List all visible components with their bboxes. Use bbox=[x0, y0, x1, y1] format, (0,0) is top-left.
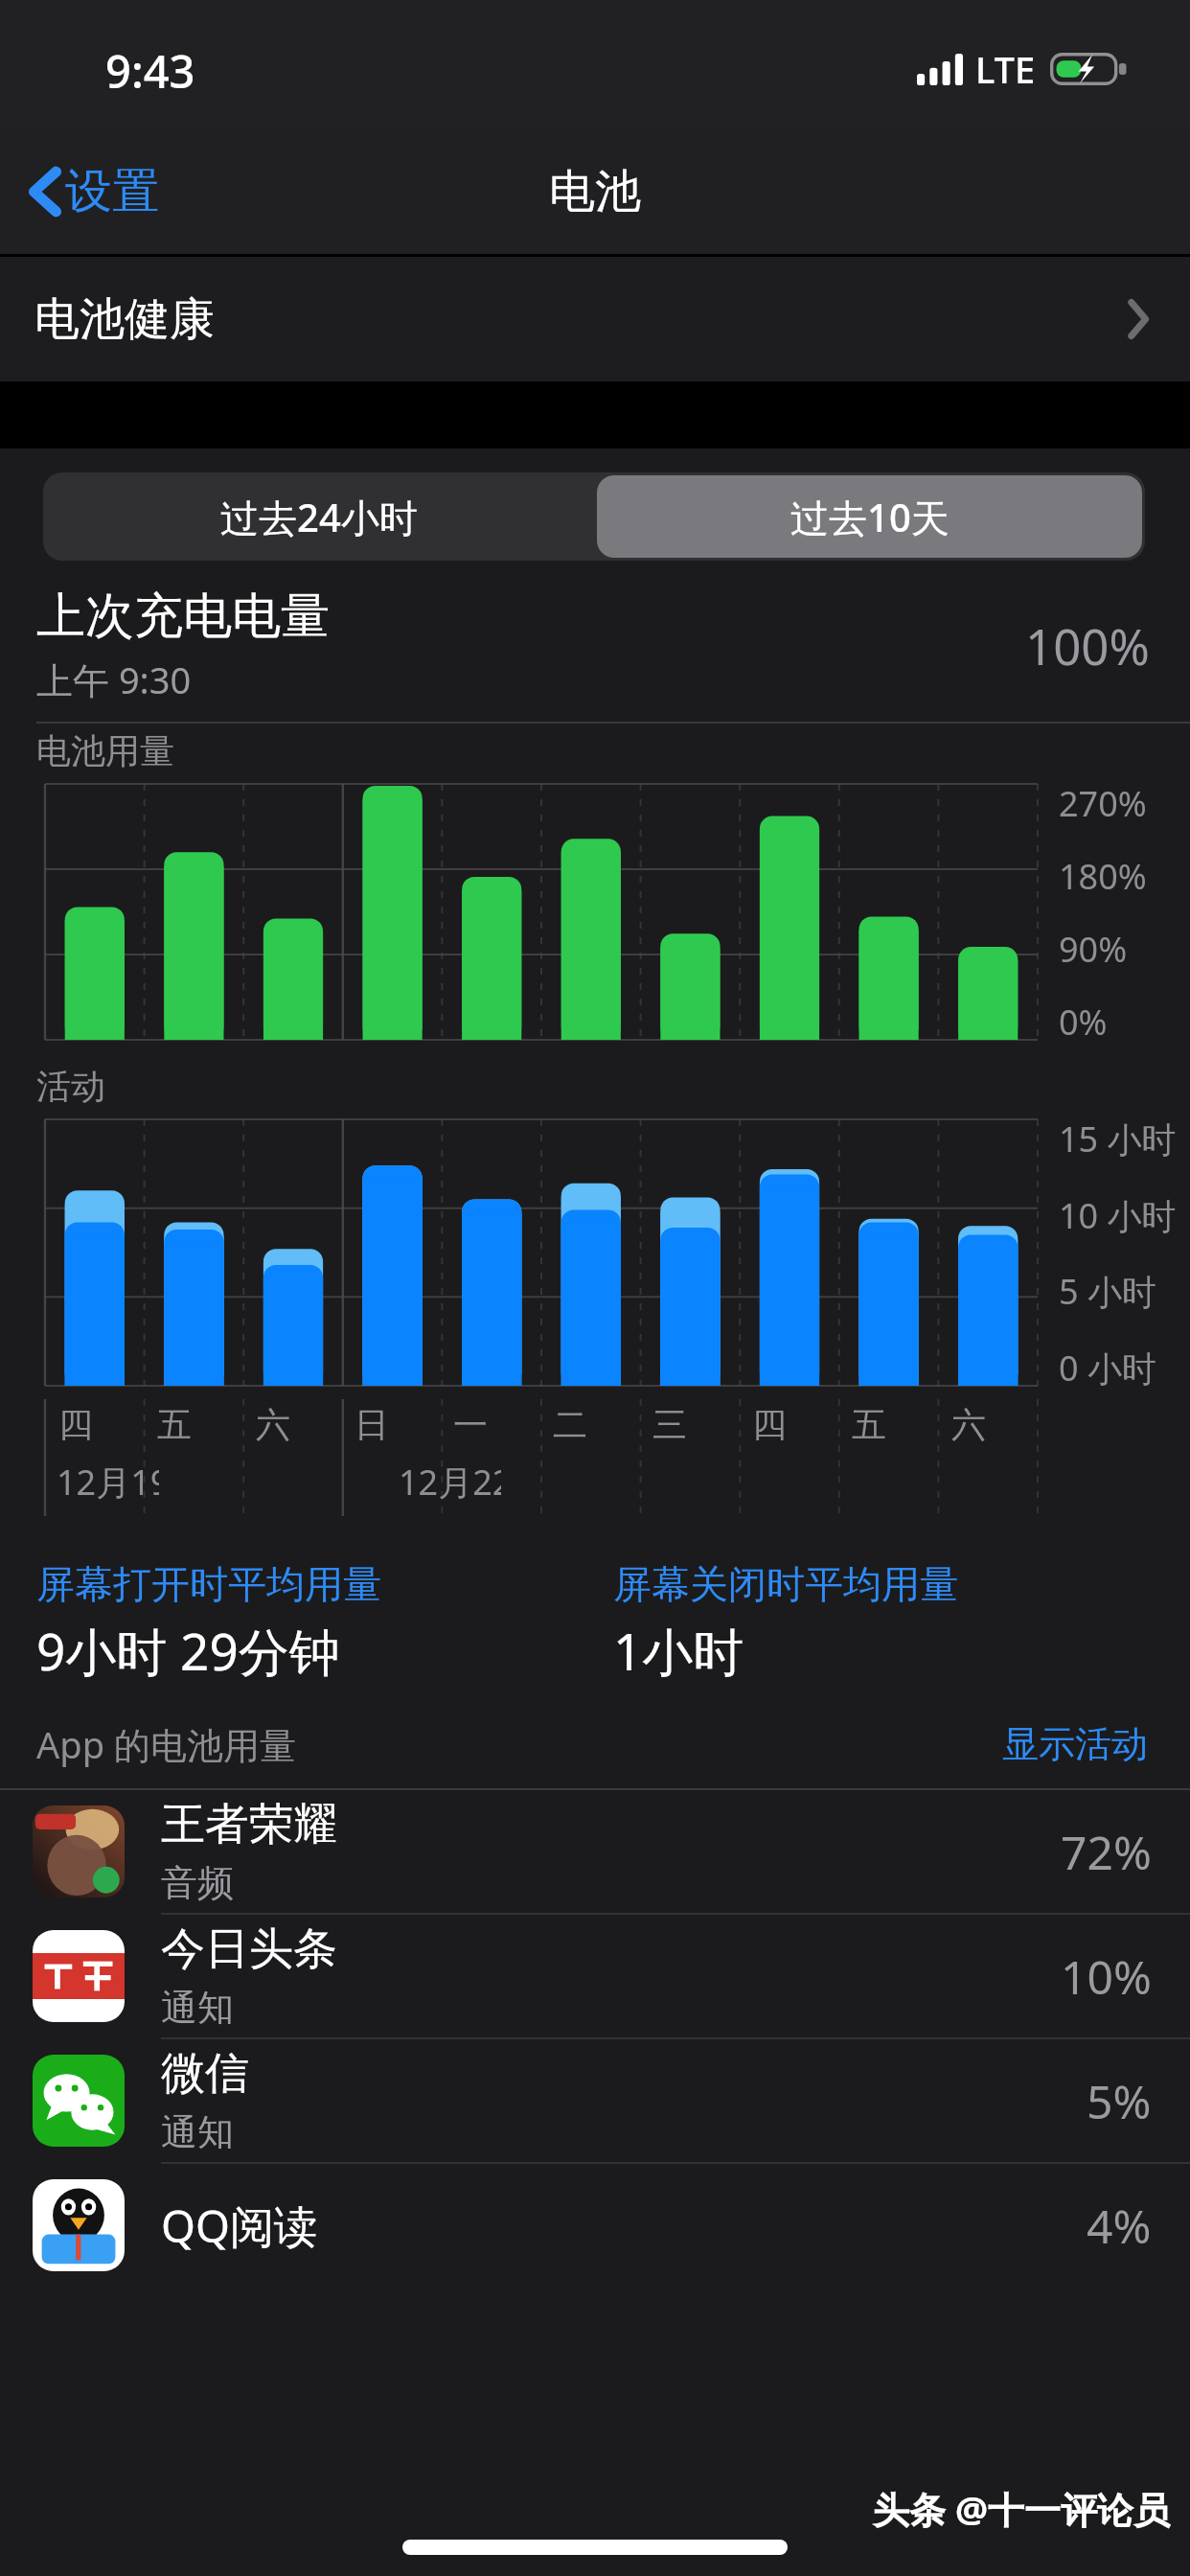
staticText: 活动 bbox=[36, 1065, 105, 1108]
staticText: 六 bbox=[951, 1403, 986, 1446]
staticText: 10 小时 bbox=[1059, 1192, 1177, 1239]
staticText: 10% bbox=[1061, 1945, 1152, 2008]
staticText: 五 bbox=[852, 1403, 886, 1446]
staticText: 电池健康 bbox=[34, 291, 215, 348]
staticText: 5 小时 bbox=[1059, 1268, 1156, 1315]
staticText: 12月19日 bbox=[57, 1459, 159, 1506]
staticText: QQ阅读 bbox=[161, 2196, 318, 2256]
staticText: 90% bbox=[1059, 926, 1128, 973]
staticText: 五 bbox=[157, 1403, 192, 1446]
staticText: LTE bbox=[975, 44, 1036, 94]
button[interactable]: 过去24小时 bbox=[43, 472, 594, 561]
staticText: App 的电池用量 bbox=[36, 1719, 296, 1769]
staticText: 270% bbox=[1059, 780, 1147, 827]
staticText: 二 bbox=[553, 1403, 587, 1446]
staticText: 9小时 29分钟 bbox=[36, 1616, 340, 1685]
staticText: 上次充电电量 bbox=[36, 586, 330, 647]
staticText: 四 bbox=[752, 1403, 787, 1446]
staticText: 头条 @十一评论员 bbox=[873, 2484, 1171, 2534]
staticText: 六 bbox=[256, 1403, 290, 1446]
staticText: 0% bbox=[1059, 999, 1108, 1046]
button[interactable]: 王者荣耀 bbox=[0, 1790, 1190, 1915]
staticText: 上午 9:30 bbox=[36, 655, 192, 704]
staticText: 电池用量 bbox=[36, 729, 174, 772]
button[interactable]: 电池健康 bbox=[0, 257, 1190, 381]
staticText: 12月22日 bbox=[399, 1459, 501, 1506]
staticText: 屏幕关闭时平均用量 bbox=[613, 1560, 958, 1608]
staticText: 0 小时 bbox=[1059, 1345, 1156, 1391]
button[interactable]: 微信 bbox=[0, 2039, 1190, 2164]
staticText: 设置 bbox=[65, 162, 159, 221]
staticText: 三 bbox=[652, 1403, 687, 1446]
button[interactable]: 过去10天 bbox=[597, 475, 1142, 558]
staticText: 电池 bbox=[549, 163, 641, 220]
staticText: 100% bbox=[1025, 612, 1150, 678]
other: 电池充电中 bbox=[1050, 51, 1127, 87]
staticText: 通知 bbox=[161, 2109, 234, 2155]
staticText: 过去24小时 bbox=[220, 491, 418, 543]
staticText: 9:43 bbox=[105, 40, 195, 102]
staticText: 4% bbox=[1087, 2195, 1152, 2257]
staticText: 四 bbox=[58, 1403, 93, 1446]
button[interactable]: 今日头条 bbox=[0, 1915, 1190, 2039]
staticText: 1小时 bbox=[613, 1616, 744, 1685]
button[interactable]: 显示活动 bbox=[998, 1717, 1152, 1771]
button[interactable]: QQ阅读 bbox=[0, 2164, 1190, 2287]
staticText: 180% bbox=[1059, 853, 1147, 900]
staticText: 显示活动 bbox=[1002, 1721, 1148, 1767]
staticText: 微信 bbox=[161, 2046, 249, 2102]
staticText: 屏幕打开时平均用量 bbox=[36, 1560, 381, 1608]
staticText: 王者荣耀 bbox=[161, 1797, 337, 1852]
staticText: 今日头条 bbox=[161, 1921, 337, 1977]
staticText: 日 bbox=[355, 1403, 389, 1446]
staticText: 一 bbox=[453, 1403, 488, 1446]
button[interactable]: 设置 bbox=[21, 154, 167, 229]
staticText: 通知 bbox=[161, 1985, 234, 2031]
staticText: 音频 bbox=[161, 1860, 234, 1906]
staticText: 5% bbox=[1087, 2070, 1152, 2132]
staticText: 15 小时 bbox=[1059, 1115, 1177, 1162]
staticText: 72% bbox=[1061, 1821, 1152, 1883]
staticText: 过去10天 bbox=[790, 491, 950, 543]
